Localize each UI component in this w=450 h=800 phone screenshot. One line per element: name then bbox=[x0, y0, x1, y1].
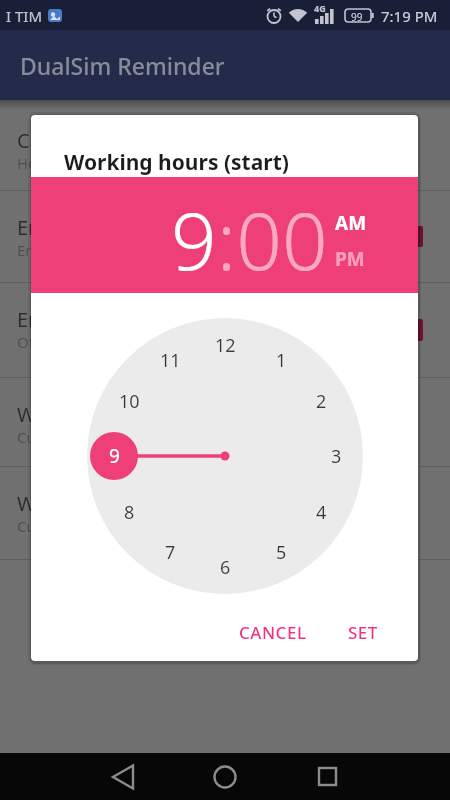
staticText: SET bbox=[348, 621, 378, 644]
button[interactable]: AM bbox=[335, 210, 367, 272]
staticText: AM bbox=[335, 210, 367, 236]
button[interactable]: Working hours (end) bbox=[0, 466, 450, 553]
staticText: Off bbox=[17, 332, 40, 352]
button[interactable] bbox=[78, 753, 168, 800]
staticText: Enabled bbox=[17, 240, 74, 260]
staticText: I TIM bbox=[6, 6, 43, 26]
staticText: DualSim Reminder bbox=[20, 50, 225, 81]
button[interactable]: CANCEL bbox=[225, 611, 321, 653]
button[interactable]: Enable reminder bbox=[0, 190, 450, 277]
staticText: Current: 6:00 PM bbox=[17, 516, 136, 536]
staticText: 11 bbox=[160, 348, 181, 373]
button[interactable]: End of work bbox=[0, 282, 450, 369]
staticText: How to remind bbox=[17, 153, 122, 173]
staticText: 7 bbox=[165, 540, 176, 565]
staticText: 3 bbox=[331, 444, 342, 469]
staticText: 2 bbox=[316, 389, 327, 414]
button[interactable] bbox=[282, 753, 372, 800]
staticText: 8 bbox=[124, 500, 135, 525]
staticText: PM bbox=[335, 246, 365, 272]
staticText: 9:00 bbox=[171, 184, 328, 293]
staticText: 5 bbox=[276, 540, 287, 565]
button[interactable]: Working hours (start) bbox=[0, 377, 450, 464]
staticText: Calls bbox=[17, 127, 61, 154]
staticText: Working hours (end) bbox=[17, 490, 210, 517]
staticText: 4 bbox=[316, 500, 327, 525]
button[interactable]: Calls bbox=[0, 103, 450, 190]
button[interactable]: DualSim Reminder bbox=[20, 50, 225, 81]
staticText: Enable reminder bbox=[17, 214, 173, 241]
staticText: 99 bbox=[351, 10, 363, 24]
staticText: 6 bbox=[220, 555, 231, 580]
staticText: Working hours (start) bbox=[17, 401, 217, 428]
staticText: End of work bbox=[17, 306, 129, 333]
button[interactable] bbox=[180, 753, 270, 800]
staticText: CANCEL bbox=[239, 621, 307, 644]
staticText: 4G bbox=[314, 2, 326, 14]
staticText: Current: 9:00 AM bbox=[17, 427, 136, 447]
staticText: 1 bbox=[276, 348, 287, 373]
button[interactable]: 9 bbox=[98, 442, 130, 470]
staticText: 12 bbox=[215, 333, 236, 358]
staticText: 7:19 PM bbox=[381, 6, 438, 26]
button[interactable]: SET bbox=[337, 611, 389, 653]
staticText: Working hours (start) bbox=[64, 148, 289, 177]
staticText: 10 bbox=[119, 389, 140, 414]
staticText: 9 bbox=[109, 443, 120, 469]
